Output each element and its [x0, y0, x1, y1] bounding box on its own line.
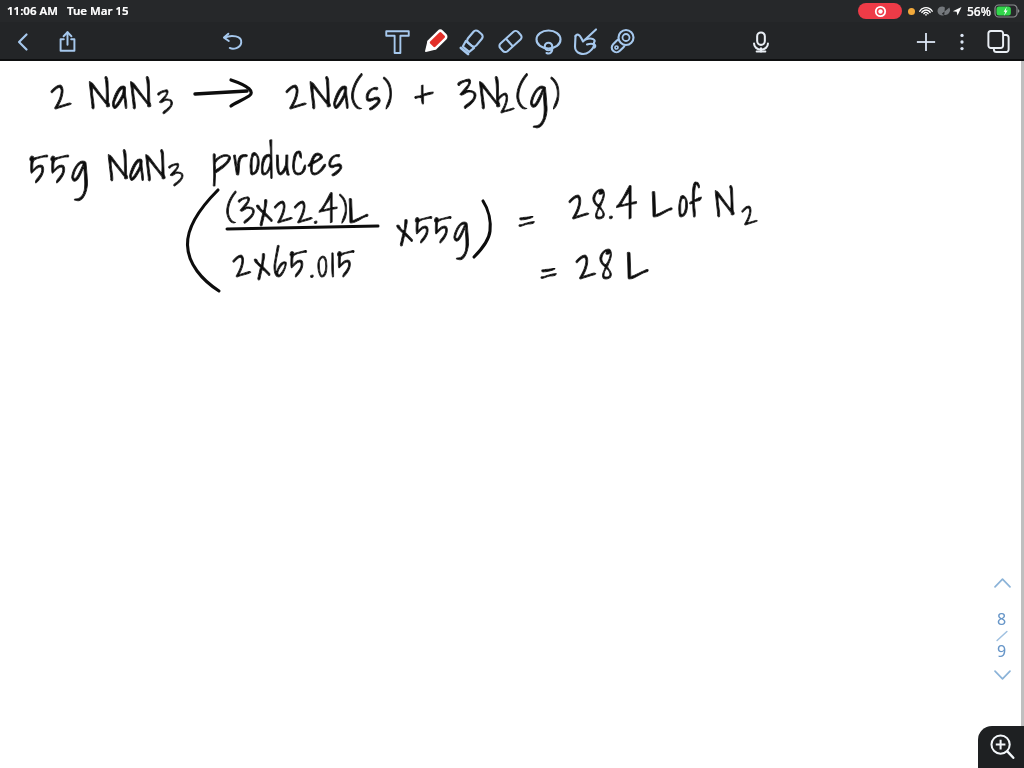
staticText: L	[626, 230, 650, 297]
staticText: 2Na(s)	[285, 58, 395, 127]
staticText: N	[714, 170, 737, 234]
staticText: 3	[157, 73, 175, 129]
button[interactable]: Zoom in	[978, 726, 1024, 768]
staticText: 2	[50, 58, 73, 127]
staticText: NaN	[88, 58, 154, 127]
staticText: 2	[741, 186, 759, 239]
staticText: L	[651, 170, 674, 234]
button[interactable]: Hand tool	[568, 23, 602, 60]
staticText: 3N	[457, 58, 503, 127]
staticText: (3x22.4)L	[226, 178, 369, 239]
staticText: 2	[497, 72, 516, 128]
staticText: produces	[212, 128, 344, 192]
button[interactable]: Pen tool	[418, 23, 452, 60]
staticText: 2	[741, 186, 759, 239]
button[interactable]: Pages	[981, 23, 1015, 60]
button[interactable]: Back	[6, 23, 40, 60]
staticText: 28	[575, 230, 616, 297]
staticText: 28.4	[568, 170, 640, 237]
button[interactable]: Microphone	[744, 23, 778, 60]
button[interactable]: Add page	[909, 23, 943, 60]
staticText: +	[414, 60, 435, 127]
staticText: NaN	[107, 133, 167, 199]
staticText: NaN	[107, 133, 167, 199]
staticText: 3	[168, 146, 185, 201]
staticText: Tue Mar 15	[67, 3, 129, 19]
staticText: 2x65.015	[232, 232, 358, 293]
staticText: 2	[497, 72, 516, 128]
button[interactable]: Shape recognition tool	[605, 23, 639, 60]
staticText: 2Na(s)	[285, 58, 395, 127]
staticText: =	[540, 236, 558, 299]
staticText: 28.4	[568, 170, 640, 237]
staticText: produces	[212, 128, 344, 192]
staticText: 3	[168, 146, 185, 201]
staticText: x55g	[396, 198, 472, 259]
staticText: (g)	[516, 58, 562, 127]
button[interactable]: Screen recording	[858, 3, 902, 19]
staticText: =	[540, 236, 558, 299]
button[interactable]: Previous page	[988, 578, 1016, 600]
staticText: L	[626, 230, 650, 297]
staticText: 2	[50, 58, 73, 127]
button[interactable]: Undo	[215, 23, 249, 60]
staticText: N	[714, 170, 737, 234]
staticText: 11:06 AM	[7, 3, 58, 19]
staticText: 55g	[29, 135, 91, 201]
button[interactable]: Highlighter tool	[455, 23, 489, 60]
button[interactable]: Next page	[988, 670, 1016, 692]
staticText: 8	[997, 608, 1007, 630]
button[interactable]: Share	[50, 23, 84, 60]
staticText: =	[518, 184, 536, 247]
staticText: x55g	[396, 198, 472, 259]
staticText: =	[518, 184, 536, 247]
staticText: 9	[997, 640, 1007, 662]
staticText: NaN	[88, 58, 154, 127]
staticText: (3x22.4)L	[226, 178, 369, 239]
staticText: +	[414, 60, 435, 127]
staticText: 3N	[457, 58, 503, 127]
staticText: 28	[575, 230, 616, 297]
button[interactable]: Text tool	[380, 23, 414, 60]
staticText: L	[651, 170, 674, 234]
button[interactable]: More options	[945, 23, 979, 60]
button[interactable]: Eraser tool	[493, 23, 527, 60]
button[interactable]: Lasso tool	[531, 23, 565, 60]
staticText: 55g	[29, 135, 91, 201]
staticText: of	[678, 172, 703, 233]
staticText: 2x65.015	[232, 232, 358, 293]
staticText: 56%	[967, 3, 991, 19]
staticText: of	[678, 172, 703, 233]
staticText: 3	[157, 73, 175, 129]
staticText: (g)	[516, 58, 562, 127]
